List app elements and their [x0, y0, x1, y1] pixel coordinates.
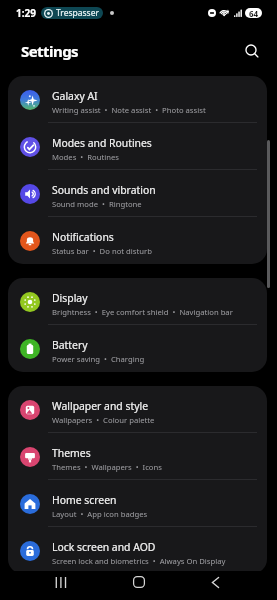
staticText: Brightness • Eye comfort shield • Naviga…: [52, 307, 233, 317]
staticText: Sound mode • Ringtone: [52, 199, 142, 209]
button[interactable]: Battery: [8, 325, 267, 372]
staticText: Notifications: [52, 230, 114, 244]
staticText: Status bar • Do not disturb: [52, 246, 152, 256]
button[interactable]: Wallpaper and style: [8, 386, 267, 433]
staticText: Modes and Routines: [52, 136, 152, 150]
button[interactable]: Back: [198, 571, 233, 593]
staticText: Trespasser: [56, 7, 99, 19]
staticText: Sounds and vibration: [52, 183, 156, 197]
button[interactable]: Galaxy AI: [8, 76, 267, 123]
staticText: Wallpapers • Colour palette: [52, 415, 155, 425]
button[interactable]: Recents: [43, 571, 78, 593]
button[interactable]: Home: [121, 571, 156, 593]
button[interactable]: Search: [239, 38, 265, 64]
staticText: Layout • App icon badges: [52, 509, 148, 519]
staticText: Screen lock and biometrics • Always On D…: [52, 556, 226, 566]
staticText: Lock screen and AOD: [52, 540, 156, 554]
staticText: Galaxy AI: [52, 89, 98, 103]
staticText: Settings: [21, 41, 79, 61]
staticText: 1:29: [16, 6, 36, 20]
staticText: Power saving • Charging: [52, 354, 145, 364]
button[interactable]: Notifications: [8, 217, 267, 264]
staticText: Display: [52, 291, 88, 305]
staticText: 64: [249, 8, 259, 18]
button[interactable]: Themes: [8, 433, 267, 480]
staticText: Wallpaper and style: [52, 399, 149, 413]
staticText: Writing assist • Note assist • Photo ass…: [52, 105, 206, 115]
staticText: Themes • Wallpapers • Icons: [52, 462, 162, 472]
staticText: Themes: [52, 446, 91, 460]
staticText: Modes • Routines: [52, 152, 119, 162]
button[interactable]: Home screen: [8, 480, 267, 527]
button[interactable]: Lock screen and AOD: [8, 527, 267, 574]
staticText: Battery: [52, 338, 88, 352]
staticText: Home screen: [52, 493, 117, 507]
button[interactable]: Sounds and vibration: [8, 170, 267, 217]
button[interactable]: Display: [8, 278, 267, 325]
button[interactable]: Modes and Routines: [8, 123, 267, 170]
